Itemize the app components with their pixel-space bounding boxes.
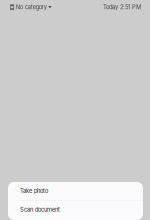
staticText: Scan document: [20, 206, 60, 213]
staticText: No category: [16, 4, 47, 11]
staticText: Today 2:51 PM: [103, 4, 141, 11]
button[interactable]: No category: [0, 2, 52, 12]
button[interactable]: Scan document: [8, 201, 143, 219]
staticText: Take photo: [20, 188, 48, 194]
button[interactable]: Take photo: [8, 182, 143, 200]
